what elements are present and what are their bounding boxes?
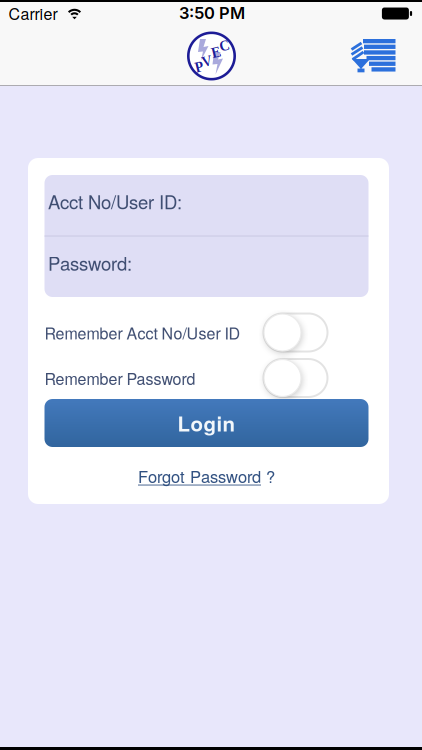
button[interactable]: Forgot Password [138, 464, 275, 488]
button[interactable]: Remember Acct No/User ID [262, 312, 328, 352]
staticText: 3:50 PM [179, 3, 245, 23]
staticText: ? [261, 464, 275, 488]
staticText: Acct No/User ID: [48, 188, 182, 214]
staticText: C [219, 38, 229, 54]
staticText: Carrier [8, 1, 57, 24]
button[interactable]: Remember Password [262, 358, 328, 398]
staticText: E [211, 45, 220, 60]
button[interactable]: Login [44, 399, 368, 447]
staticText: P [195, 59, 204, 75]
staticText: Remember Password [44, 366, 195, 389]
staticText: V [202, 54, 212, 69]
staticText: Forgot Password [138, 464, 261, 488]
button[interactable]: Menu [350, 39, 395, 73]
staticText: Remember Acct No/User ID [44, 321, 240, 344]
staticText: Login [177, 408, 235, 438]
staticText: Password: [48, 249, 132, 276]
